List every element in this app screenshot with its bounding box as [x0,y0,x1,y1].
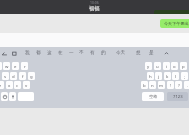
staticText: m [159,82,164,88]
staticText: z [0,82,2,88]
staticText: h [149,73,152,79]
button[interactable]: 这 [44,49,54,57]
staticText: v [25,82,28,88]
staticText: . [187,82,189,88]
staticText: s [4,73,7,79]
staticText: i [166,63,168,69]
button[interactable]: s [2,72,9,80]
button[interactable]: n [149,81,156,89]
button[interactable]: y [145,62,152,70]
button[interactable]: Expand candidates [163,50,170,57]
button[interactable]: 7123 [167,92,188,101]
staticText: 一 [69,50,74,56]
button[interactable]: Clipboard [11,50,18,57]
button[interactable]: u [154,62,161,70]
button[interactable]: q [0,62,2,70]
button[interactable]: c [14,81,21,89]
staticText: 有 [90,50,95,56]
staticText: 今天 [116,50,126,56]
staticText: ? [178,82,180,88]
button[interactable]: f [19,72,26,80]
staticText: p [182,63,185,69]
button[interactable]: 我 [22,49,32,57]
button[interactable]: i [163,62,170,70]
staticText: w [5,63,9,69]
staticText: ; [184,73,186,79]
staticText: b [143,82,146,88]
staticText: 福福 [89,5,100,12]
button[interactable]: Undo [1,50,8,57]
button[interactable]: m [158,81,165,89]
staticText: g [30,73,33,79]
staticText: j [158,73,160,79]
button[interactable]: 在 [55,49,65,57]
button[interactable]: 有 [87,49,97,57]
staticText: y [147,63,150,69]
staticText: d [12,73,15,79]
button[interactable]: g [28,72,35,80]
button[interactable] [18,92,34,101]
button[interactable]: 的 [98,49,108,57]
button[interactable]: 不 [76,49,86,57]
staticText: ! [170,82,172,88]
button[interactable]: e [12,62,19,70]
button[interactable]: l [172,72,179,80]
staticText: c [16,82,19,88]
staticText: 空格 [149,94,158,99]
button[interactable]: b [141,81,148,89]
button[interactable]: h [147,72,154,80]
staticText: 在 [58,50,63,56]
staticText: 的 [101,50,106,56]
button[interactable]: 都 [33,49,43,57]
staticText: 7123 [173,94,183,100]
button[interactable]: Emoji [1,92,8,101]
staticText: x [8,82,11,88]
button[interactable]: z [0,81,4,89]
button[interactable]: 一 [66,49,76,57]
button[interactable]: 今天下午要出发了吗 [160,19,189,28]
staticText: 想 [136,50,141,56]
button[interactable]: 今天 [114,49,127,57]
button[interactable]: Voice input [9,92,16,101]
button[interactable]: o [171,62,178,70]
staticText: 这 [47,50,52,56]
staticText: e [14,63,17,69]
button[interactable]: 是 [146,49,156,57]
button[interactable]: ? [175,81,182,89]
button[interactable]: x [6,81,13,89]
staticText: n [151,82,154,88]
button[interactable]: v [23,81,30,89]
button[interactable]: p [180,62,187,70]
staticText: r [24,63,26,69]
staticText: 是 [149,50,154,56]
staticText: o [173,63,176,69]
button[interactable]: r [21,62,28,70]
button[interactable]: ! [167,81,174,89]
button[interactable]: 空格 [142,92,164,101]
button[interactable]: j [155,72,162,80]
staticText: k [166,73,169,79]
staticText: u [156,63,159,69]
button[interactable]: k [164,72,171,80]
staticText: 我 [25,50,30,56]
staticText: f [22,73,24,79]
staticText: 10:06 [90,0,99,5]
staticText: l [175,73,177,79]
button[interactable]: w [3,62,10,70]
staticText: 今天下午要出发了吗 [164,21,189,26]
button[interactable]: ; [181,72,188,80]
button[interactable]: . [184,81,189,89]
staticText: 不 [79,50,84,56]
staticText: 都 [36,50,41,56]
button[interactable]: d [10,72,17,80]
button[interactable]: 想 [133,49,143,57]
